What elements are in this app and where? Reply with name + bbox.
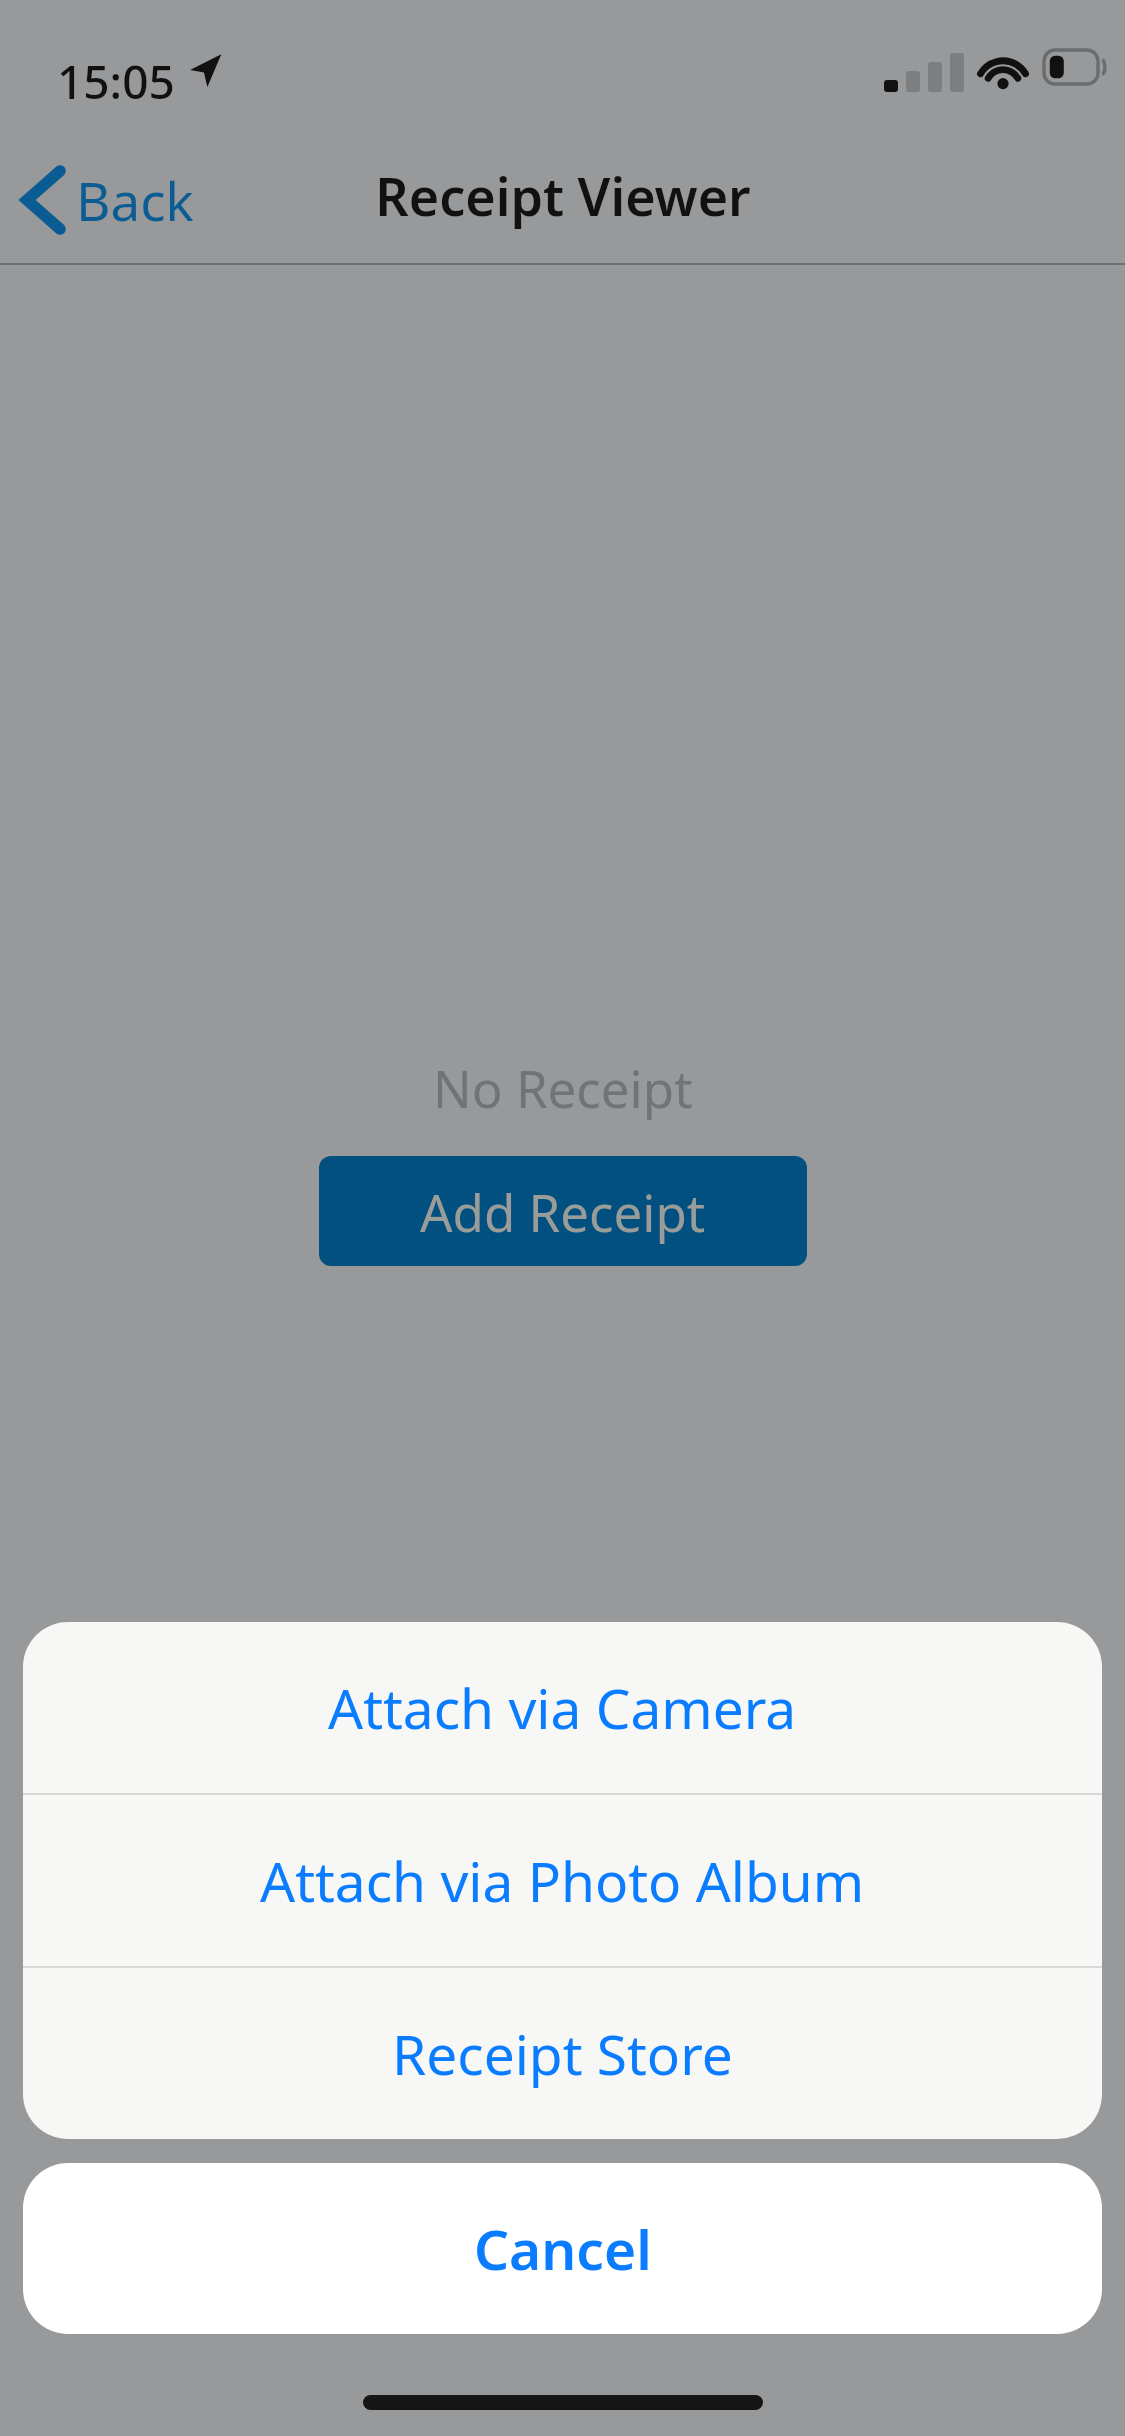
button[interactable]: Attach via Photo Album [23,1795,1102,1966]
staticText: Attach via Camera [328,1670,797,1745]
staticText: Receipt Store [392,2016,733,2091]
staticText: Receipt Viewer [375,160,751,231]
button[interactable]: Cancel [23,2163,1102,2334]
button[interactable]: Receipt Store [23,1968,1102,2139]
staticText: 15:05 [57,50,175,113]
staticText: No Receipt [433,1053,693,1122]
staticText: Cancel [474,2211,652,2286]
staticText: Add Receipt [420,1177,706,1246]
button[interactable]: Back [10,155,214,245]
button[interactable]: Add Receipt [319,1156,807,1266]
staticText: Attach via Photo Album [260,1843,865,1918]
staticText: Back [76,164,194,236]
button[interactable]: Attach via Camera [23,1622,1102,1793]
